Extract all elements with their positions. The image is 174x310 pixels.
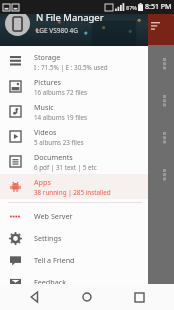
button[interactable]: Home <box>70 284 104 310</box>
staticText: Storage <box>34 52 61 62</box>
button[interactable]: Storage <box>0 49 148 74</box>
staticText: 5 albums 23 files <box>34 138 84 147</box>
staticText: 38 running | 285 installed <box>34 188 111 197</box>
staticText: 8:51 PM <box>145 2 172 12</box>
staticText: Settings <box>34 233 62 243</box>
button[interactable]: Music <box>0 99 148 124</box>
staticText: 6 pdf | 31 text | 5 etc <box>34 163 97 172</box>
staticText: Documents <box>34 152 73 162</box>
staticText: Videos <box>34 127 57 137</box>
staticText: 14 albums 19 files <box>34 113 88 122</box>
button[interactable]: Feedback <box>0 271 148 293</box>
button[interactable]: Settings <box>0 227 148 249</box>
button[interactable]: Recents <box>122 284 156 310</box>
staticText: I : 71.5% | E : 30.5% used <box>34 63 108 72</box>
staticText: LGE VS980 4G <box>36 26 79 35</box>
button[interactable]: Back <box>18 284 52 310</box>
staticText: Feedback <box>34 277 66 287</box>
button[interactable]: Tell a Friend <box>0 249 148 271</box>
button[interactable]: Pictures <box>0 74 148 99</box>
button[interactable]: Videos <box>0 124 148 149</box>
button[interactable]: Web Server <box>0 205 148 227</box>
staticText: N File Manager <box>36 11 104 24</box>
staticText: Pictures <box>34 77 62 87</box>
staticText: Web Server <box>34 211 73 221</box>
staticText: 87% <box>126 4 137 11</box>
staticText: Apps <box>34 177 51 187</box>
staticText: 16 albums 72 files <box>34 88 88 97</box>
button[interactable]: Documents <box>0 149 148 174</box>
staticText: Tell a Friend <box>34 255 75 265</box>
button[interactable]: Apps <box>0 174 148 199</box>
staticText: Music <box>34 102 54 112</box>
